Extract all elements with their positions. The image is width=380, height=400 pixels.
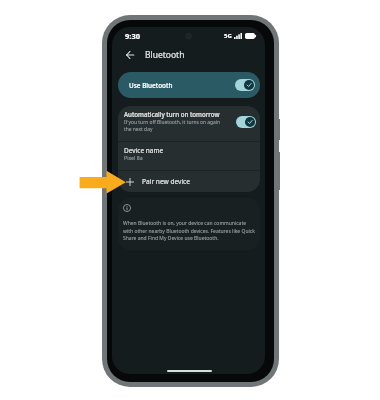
button[interactable]: Automatically turn on tomorrow: [118, 106, 260, 141]
staticText: Bluetooth: [145, 49, 185, 61]
staticText: Pixel 8a: [124, 154, 143, 161]
button[interactable]: Back: [120, 45, 140, 65]
staticText: 9:30: [125, 31, 140, 41]
staticText: If you turn off Bluetooth, it turns on a…: [124, 119, 221, 133]
staticText: Use Bluetooth: [129, 81, 235, 90]
button[interactable]: Pair new device: [118, 171, 260, 192]
staticText: Device name: [124, 146, 164, 155]
staticText: Automatically turn on tomorrow: [124, 110, 220, 118]
staticText: Pair new device: [142, 177, 190, 186]
button[interactable]: Device name: [118, 142, 260, 170]
staticText: 5G: [224, 32, 232, 40]
staticText: When Bluetooth is on, your device can co…: [123, 220, 255, 241]
button[interactable]: Use Bluetooth: [118, 72, 260, 98]
